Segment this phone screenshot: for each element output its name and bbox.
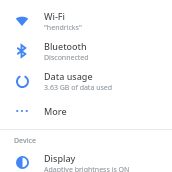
staticText: "hendricks" bbox=[44, 23, 82, 33]
staticText: More bbox=[44, 105, 67, 117]
other: Data usage bbox=[14, 73, 30, 89]
button[interactable]: Bluetooth bbox=[0, 36, 172, 66]
button[interactable]: Wi-Fi bbox=[0, 6, 172, 36]
staticText: Wi-Fi bbox=[44, 10, 65, 22]
staticText: Display bbox=[44, 152, 76, 164]
staticText: 3.63 GB of data used bbox=[44, 83, 113, 93]
staticText: Data usage bbox=[44, 70, 93, 82]
staticText: Bluetooth bbox=[44, 40, 87, 52]
other: More bbox=[14, 103, 30, 119]
staticText: Disconnected bbox=[44, 53, 89, 63]
other: Bluetooth bbox=[14, 43, 30, 59]
button[interactable]: More bbox=[0, 96, 172, 126]
staticText: Device bbox=[14, 136, 37, 146]
staticText: Adaptive brightness is ON bbox=[44, 165, 130, 172]
button[interactable]: Display bbox=[0, 152, 172, 172]
button[interactable]: Data usage bbox=[0, 66, 172, 96]
other: Wi-Fi bbox=[14, 13, 30, 29]
other: Display bbox=[14, 154, 30, 170]
